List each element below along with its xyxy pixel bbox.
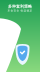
staticText: 多种套利策略 <box>8 4 32 9</box>
staticText: 本金安全 收益稳定 <box>7 9 32 12</box>
